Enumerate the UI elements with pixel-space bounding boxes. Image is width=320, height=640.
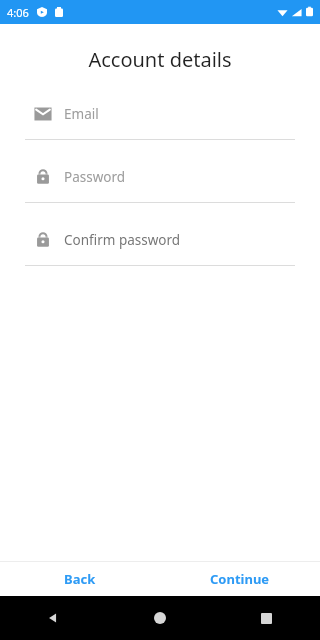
button[interactable]: Home — [106, 596, 213, 640]
staticText: 4:06 — [7, 5, 29, 20]
staticText: Password — [64, 168, 126, 186]
staticText: Account details — [0, 46, 320, 73]
staticText: Continue — [210, 570, 270, 588]
button[interactable]: Recent apps — [213, 596, 320, 640]
button[interactable]: Back — [0, 596, 106, 640]
button[interactable]: Email — [25, 98, 295, 140]
button[interactable]: Confirm password — [25, 224, 295, 266]
staticText: Back — [64, 570, 96, 588]
button[interactable]: Password — [25, 161, 295, 203]
button[interactable]: Back — [0, 562, 160, 596]
staticText: Email — [64, 105, 99, 123]
button[interactable]: Continue — [160, 562, 320, 596]
staticText: Confirm password — [64, 231, 181, 249]
